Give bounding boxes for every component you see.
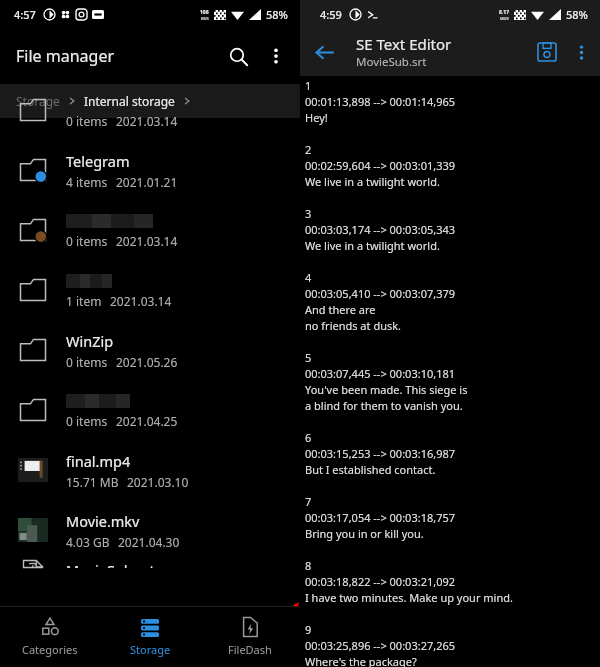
staticText: 8 — [305, 558, 312, 573]
button[interactable]: Categories — [0, 607, 100, 667]
staticText: 2021.03.10 — [127, 474, 189, 490]
button[interactable]: Storage — [100, 607, 200, 667]
button[interactable]: WinZip — [0, 320, 300, 380]
staticText: 2021.05.26 — [116, 354, 178, 370]
staticText: MovieSub.srt — [66, 560, 155, 568]
staticText: 8.17 — [499, 9, 509, 16]
staticText: 3 — [305, 206, 312, 221]
staticText: 106 — [200, 9, 209, 16]
button[interactable]: MovieSub.srt — [0, 560, 300, 568]
staticText: 58% — [566, 7, 588, 22]
staticText: 00:02:59,604 --> 00:03:01,339 — [305, 158, 456, 173]
staticText: 58% — [266, 7, 288, 22]
staticText: 00:01:13,898 --> 00:01:14,965 — [305, 94, 456, 109]
staticText: 00:03:25,896 --> 00:03:27,265 — [305, 638, 456, 653]
staticText: 5 — [305, 350, 312, 365]
staticText: 2021.03.14 — [110, 293, 172, 309]
staticText: And there are — [305, 302, 376, 317]
button[interactable]: More options — [258, 38, 294, 74]
staticText: We live in a twilight world. — [305, 238, 440, 253]
staticText: 1 item — [66, 293, 102, 309]
staticText: 4:59 — [320, 7, 342, 22]
staticText: 2021.03.14 — [116, 113, 178, 129]
staticText: FileDash — [228, 642, 272, 657]
staticText: But I established contact. — [305, 462, 436, 477]
staticText: Storage — [130, 642, 171, 657]
staticText: 2021.01.21 — [116, 174, 178, 190]
staticText: 9 — [305, 622, 312, 637]
button[interactable]: 0 items — [0, 80, 300, 140]
staticText: 4 — [305, 270, 312, 285]
staticText: a blind for them to vanish you. — [305, 398, 463, 413]
button[interactable]: Storage — [16, 93, 60, 109]
staticText: WinZip — [66, 331, 114, 351]
staticText: We live in a twilight world. — [305, 174, 440, 189]
staticText: 4.03 GB — [66, 534, 110, 550]
staticText: I have two minutes. Make up your mind. — [305, 590, 513, 605]
staticText: 2 — [305, 142, 312, 157]
button[interactable]: final.mp4 — [0, 440, 300, 500]
staticText: 4 items — [66, 174, 108, 190]
staticText: 1 — [305, 78, 312, 93]
staticText: Telegram — [66, 151, 130, 171]
staticText: 7 — [305, 494, 312, 509]
staticText: 4:57 — [14, 7, 36, 22]
button[interactable]: More options — [566, 37, 596, 67]
staticText: 00:03:03,174 --> 00:03:05,343 — [305, 222, 456, 237]
button[interactable]: 0 items — [0, 380, 300, 440]
staticText: Categories — [22, 642, 78, 657]
button[interactable]: Back — [304, 32, 344, 72]
staticText: 0 items — [66, 354, 108, 370]
staticText: KB/S — [201, 16, 209, 21]
staticText: MB/S — [500, 16, 509, 21]
staticText: 0 items — [66, 233, 108, 249]
staticText: 00:03:05,410 --> 00:03:07,379 — [305, 286, 456, 301]
staticText: 00:03:17,054 --> 00:03:18,757 — [305, 510, 456, 525]
staticText: Bring you in or kill you. — [305, 526, 424, 541]
staticText: 2021.04.30 — [118, 534, 180, 550]
staticText: Hey! — [305, 110, 328, 125]
staticText: no friends at dusk. — [305, 318, 402, 333]
staticText: MovieSub.srt — [356, 54, 427, 70]
staticText: SE Text Editor — [356, 34, 452, 54]
staticText: 00:03:07,445 --> 00:03:10,181 — [305, 366, 456, 381]
staticText: 15.71 MB — [66, 474, 119, 490]
staticText: You've been made. This siege is — [305, 382, 468, 397]
button[interactable]: Movie.mkv — [0, 500, 300, 560]
button[interactable]: Internal storage — [84, 93, 175, 109]
button[interactable]: FileDash — [200, 607, 300, 667]
staticText: 00:03:15,253 --> 00:03:16,987 — [305, 446, 456, 461]
button[interactable]: Save — [528, 33, 566, 71]
staticText: 0 items — [66, 113, 108, 129]
button[interactable]: 1 item — [0, 260, 300, 320]
staticText: 2021.04.25 — [116, 413, 178, 429]
button[interactable]: 0 items — [0, 200, 300, 260]
staticText: 00:03:18,822 --> 00:03:21,092 — [305, 574, 456, 589]
staticText: Where's the package? — [305, 654, 417, 667]
button[interactable]: Telegram — [0, 140, 300, 200]
staticText: final.mp4 — [66, 451, 131, 471]
staticText: 0 items — [66, 413, 108, 429]
staticText: File manager — [16, 45, 115, 67]
staticText: 6 — [305, 430, 312, 445]
button[interactable]: Search — [218, 36, 258, 76]
staticText: Movie.mkv — [66, 511, 140, 531]
staticText: 2021.03.14 — [116, 233, 178, 249]
